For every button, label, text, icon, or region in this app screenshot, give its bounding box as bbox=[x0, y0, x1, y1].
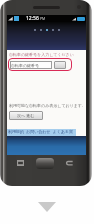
staticText: 12:56 bbox=[26, 15, 39, 22]
staticText: 自転車の鍵番号 bbox=[11, 63, 40, 68]
button[interactable] bbox=[54, 61, 66, 69]
staticText: 利用可能な自転車のみ表示しております。 bbox=[9, 103, 86, 108]
button[interactable]: Back bbox=[66, 160, 73, 166]
button[interactable]: 利用規約 お問い合わせ よくある質問 bbox=[7, 129, 76, 136]
button[interactable]: 自転車の鍵番号 bbox=[10, 61, 52, 69]
button[interactable]: Menu bbox=[17, 160, 24, 166]
button[interactable]: Home bbox=[36, 158, 54, 169]
staticText: PM bbox=[40, 16, 46, 21]
staticText: 次へ 進む bbox=[17, 113, 35, 118]
button[interactable]: 次へ 進む bbox=[9, 111, 43, 120]
staticText: 自転車の鍵番号を入力してください bbox=[9, 52, 74, 57]
staticText: 利用規約 お問い合わせ よくある質問 bbox=[8, 129, 76, 136]
